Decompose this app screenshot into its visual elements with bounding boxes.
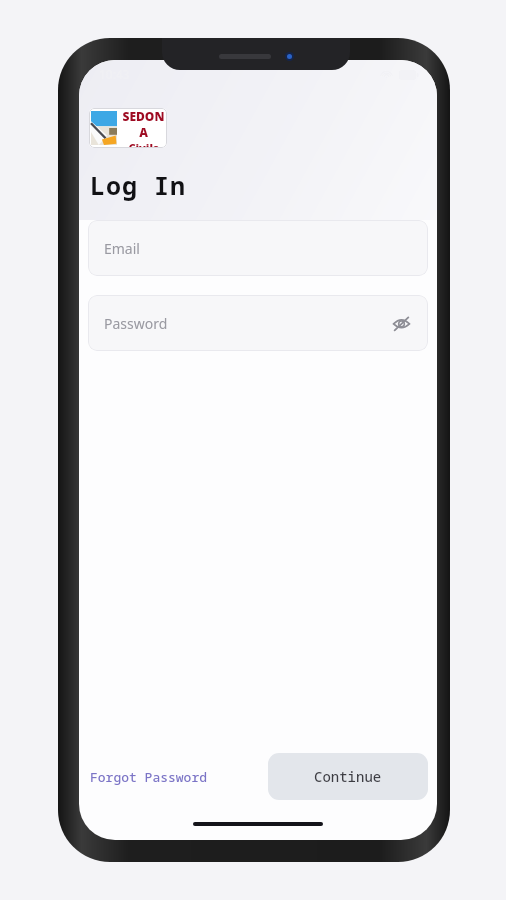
staticText: Civils <box>128 140 159 148</box>
button[interactable]: Continue <box>268 753 428 800</box>
staticText: SEDONA <box>120 108 167 140</box>
button[interactable]: Sedona Civils logo <box>89 108 167 148</box>
button[interactable]: Password <box>88 295 428 351</box>
staticText: Continue <box>314 767 382 786</box>
button[interactable]: Email <box>88 220 428 276</box>
staticText: Email <box>104 239 140 258</box>
button[interactable]: Forgot Password <box>88 762 210 792</box>
button[interactable]: Show password <box>384 306 418 340</box>
staticText: Log In <box>90 168 187 202</box>
staticText: Password <box>104 314 168 333</box>
staticText: Forgot Password <box>90 768 208 786</box>
